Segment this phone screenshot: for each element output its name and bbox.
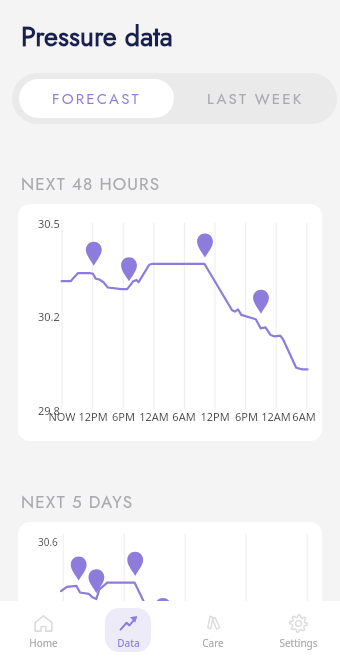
staticText: NEXT 5 DAYS bbox=[21, 490, 134, 515]
button[interactable]: FORECAST bbox=[19, 79, 174, 118]
staticText: Care bbox=[202, 636, 224, 650]
staticText: FORECAST bbox=[52, 88, 141, 110]
staticText: 6AM bbox=[172, 409, 196, 424]
staticText: 12PM bbox=[78, 409, 108, 424]
staticText: 29.8 bbox=[38, 403, 60, 418]
staticText: 30.5 bbox=[38, 216, 60, 231]
staticText: NOW bbox=[48, 409, 76, 424]
staticText: Settings bbox=[279, 636, 318, 650]
staticText: Data bbox=[117, 636, 140, 650]
staticText: Home bbox=[29, 636, 58, 650]
staticText: 30.2 bbox=[38, 309, 60, 324]
button[interactable]: LAST WEEK bbox=[174, 73, 337, 124]
staticText: 6AM bbox=[292, 409, 316, 424]
button[interactable]: Home bbox=[20, 608, 66, 652]
staticText: 12AM bbox=[139, 409, 169, 424]
staticText: 6PM bbox=[235, 409, 258, 424]
staticText: 6PM bbox=[112, 409, 135, 424]
staticText: 30.6 bbox=[38, 535, 58, 549]
staticText: NEXT 48 HOURS bbox=[21, 172, 161, 197]
staticText: Pressure data bbox=[21, 17, 173, 56]
button[interactable]: Data bbox=[105, 608, 151, 652]
button[interactable]: Settings bbox=[275, 608, 321, 652]
staticText: LAST WEEK bbox=[207, 88, 304, 110]
button[interactable]: Care bbox=[190, 608, 236, 652]
staticText: 12AM bbox=[261, 409, 291, 424]
staticText: 12PM bbox=[200, 409, 230, 424]
